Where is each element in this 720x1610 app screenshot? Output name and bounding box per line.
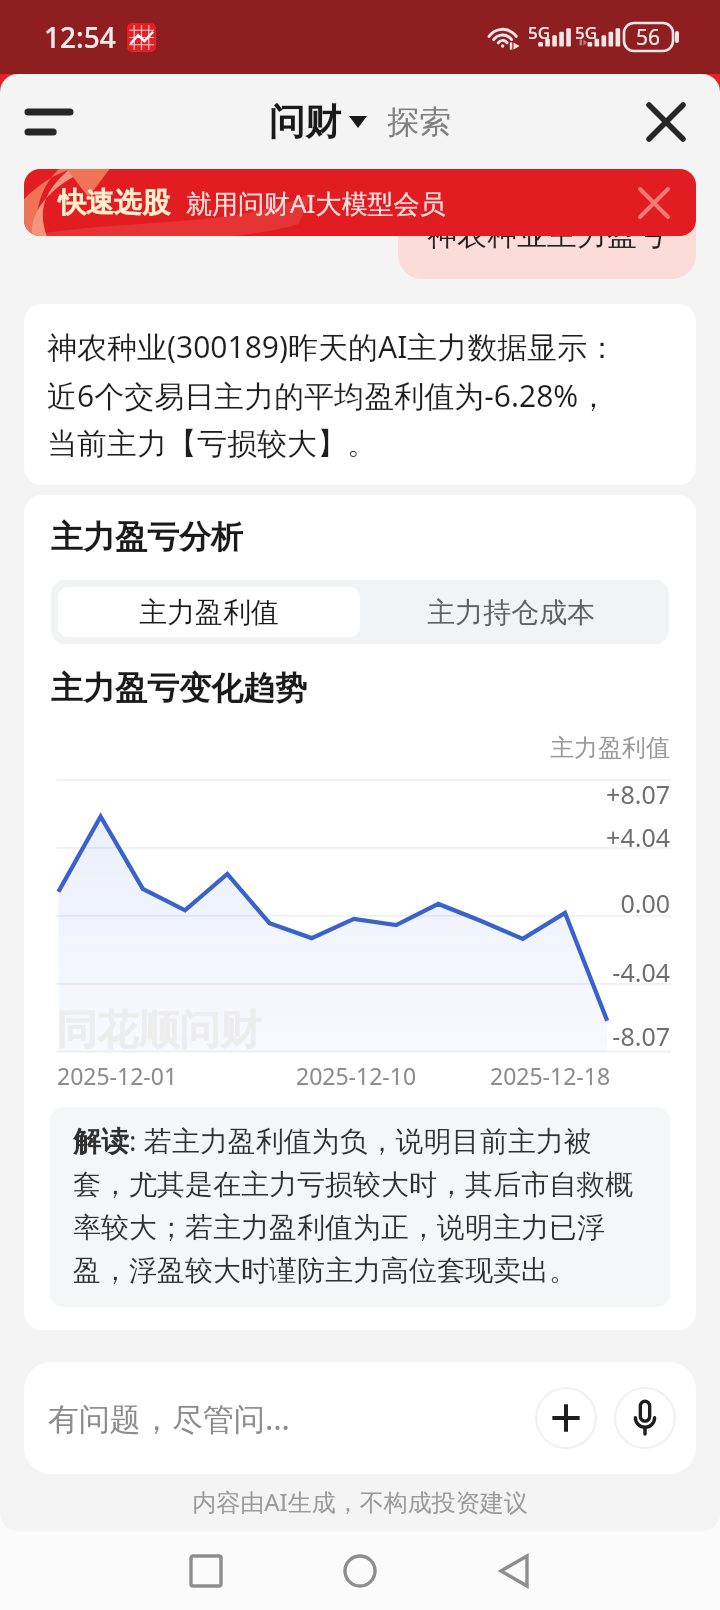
staticText: 主力盈利值 — [139, 595, 279, 630]
button[interactable]: Menu — [20, 93, 78, 151]
button[interactable]: 问财 — [269, 99, 367, 144]
staticText: 主力盈亏分析 — [51, 517, 243, 557]
staticText: 有问题，尽管问... — [48, 1397, 290, 1439]
button[interactable]: 神农种业主力盈亏 — [398, 190, 696, 279]
button[interactable]: 神农种业(300189)昨天的AI主力数据显示： 近6个交易日主力的平均盈利值为… — [24, 304, 696, 485]
staticText: 0.00 — [24, 886, 670, 920]
button[interactable]: 探索 — [387, 102, 451, 142]
staticText: 56 — [636, 23, 661, 51]
staticText: 12:54 — [44, 18, 116, 56]
button[interactable]: Close — [640, 96, 692, 148]
button[interactable]: Recents — [168, 1533, 244, 1609]
staticText: 问财 — [269, 99, 341, 144]
button[interactable]: 主力盈利值 — [58, 587, 360, 637]
button[interactable]: Dismiss banner — [634, 183, 674, 223]
staticText: 同花顺问财 — [56, 1005, 261, 1057]
staticText: 快速选股 — [58, 185, 170, 220]
button[interactable]: Add — [535, 1387, 597, 1449]
staticText: 2025-12-18 — [490, 1060, 611, 1091]
button[interactable]: 主力持仓成本 — [360, 587, 662, 637]
staticText: 主力持仓成本 — [427, 595, 595, 630]
staticText: 神农种业主力盈亏 — [427, 216, 667, 254]
button[interactable]: Back — [476, 1533, 552, 1609]
staticText: 5G — [528, 21, 551, 44]
button[interactable]: 快速选股 — [24, 169, 696, 236]
staticText: 神农种业(300189)昨天的AI主力数据显示： 近6个交易日主力的平均盈利值为… — [47, 326, 618, 463]
staticText: +4.04 — [24, 820, 670, 854]
staticText: 主力盈利值 — [24, 733, 670, 763]
staticText: 5G — [575, 21, 598, 44]
staticText: 2025-12-10 — [296, 1060, 417, 1091]
staticText: -8.07 — [24, 1019, 670, 1053]
button[interactable]: 有问题，尽管问... — [24, 1362, 696, 1474]
staticText: +8.07 — [24, 777, 670, 811]
staticText: -4.04 — [24, 955, 670, 989]
staticText: 就用问财AI大模型会员 — [186, 185, 446, 221]
button[interactable]: Voice input — [614, 1387, 676, 1449]
staticText: 解读: 若主力盈利值为负，说明目前主力被 套，尤其是在主力亏损较大时，其后市自救… — [73, 1121, 633, 1289]
staticText: 内容由AI生成，不构成投资建议 — [0, 1485, 720, 1518]
staticText: 主力盈亏变化趋势 — [51, 668, 307, 708]
staticText: 2025-12-01 — [57, 1060, 178, 1091]
button[interactable]: Home — [322, 1533, 398, 1609]
